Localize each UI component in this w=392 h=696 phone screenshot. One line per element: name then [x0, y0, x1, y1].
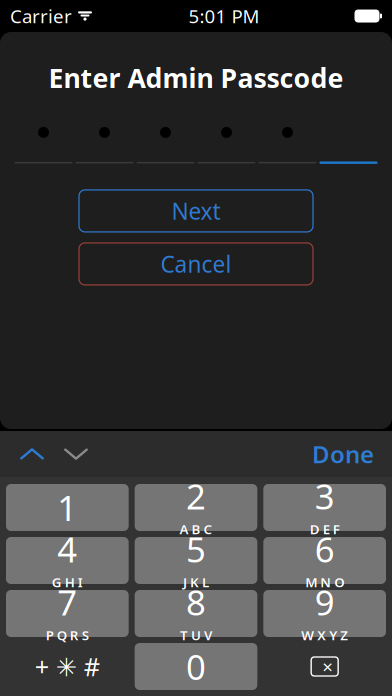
button[interactable]: Previous field	[10, 434, 54, 474]
staticText: A B C	[179, 520, 212, 538]
staticText: 4	[57, 526, 77, 572]
button[interactable]: Next	[79, 190, 313, 232]
staticText: Next	[171, 196, 220, 226]
button[interactable]: 3	[263, 484, 386, 531]
button[interactable]: Delete	[263, 643, 386, 690]
button[interactable]: 9	[263, 590, 386, 637]
staticText: J K L	[183, 573, 209, 591]
button[interactable]: 8	[135, 590, 257, 637]
staticText: Cancel	[160, 249, 231, 279]
button[interactable]: Next field	[54, 434, 98, 474]
staticText: 0	[186, 643, 206, 689]
staticText: W X Y Z	[301, 626, 348, 644]
staticText: D E F	[310, 520, 340, 538]
staticText: 8	[186, 579, 206, 625]
button[interactable]: 4	[6, 537, 129, 584]
staticText: 5:01 PM	[188, 4, 259, 28]
staticText: G H I	[52, 573, 83, 591]
button[interactable]: Done	[304, 434, 382, 474]
staticText: M N O	[305, 573, 344, 591]
staticText: 9	[315, 579, 335, 625]
staticText: Done	[312, 438, 374, 470]
button[interactable]: 2	[135, 484, 257, 531]
staticText: Enter Admin Passcode	[48, 60, 343, 95]
staticText: 1	[57, 484, 77, 530]
staticText: 3	[315, 473, 335, 519]
button[interactable]: 0	[135, 643, 257, 690]
button[interactable]: 1	[6, 484, 129, 531]
staticText: ×	[322, 654, 333, 679]
button[interactable]: Cancel	[79, 243, 313, 285]
button[interactable]: 5	[135, 537, 257, 584]
staticText: T U V	[180, 626, 212, 644]
staticText: 5	[186, 526, 206, 572]
staticText: 7	[57, 579, 77, 625]
staticText: 2	[186, 473, 206, 519]
staticText: P Q R S	[46, 626, 89, 644]
button[interactable]: 6	[263, 537, 386, 584]
staticText: 6	[315, 526, 335, 572]
staticText: Carrier	[10, 4, 72, 28]
staticText: + ✳ #	[35, 650, 100, 683]
button[interactable]: 7	[6, 590, 129, 637]
button[interactable]: Plus, asterisk, pound	[6, 643, 129, 690]
